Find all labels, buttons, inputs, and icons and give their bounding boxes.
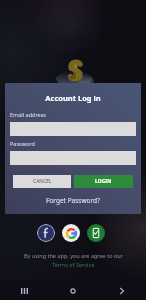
button[interactable]: Sign in with Facebook xyxy=(37,224,55,242)
button[interactable]: Sign in with Google xyxy=(62,224,80,242)
staticText: LOGIN xyxy=(95,178,112,185)
staticText: Account Log in xyxy=(5,93,141,103)
button[interactable]: Forget Password? xyxy=(43,194,103,207)
button[interactable]: LOGIN xyxy=(74,175,133,188)
button[interactable]: Back xyxy=(97,281,146,300)
staticText: Forget Password? xyxy=(46,196,100,205)
button[interactable]: Sign in with phone number xyxy=(87,224,105,242)
staticText: CANCEL xyxy=(33,178,52,185)
button[interactable]: Terms of Service xyxy=(52,261,95,268)
button[interactable]: CANCEL xyxy=(13,175,71,188)
staticText: Password xyxy=(10,140,35,147)
staticText: By using the app, you are agree to our xyxy=(24,252,123,259)
staticText: Email address xyxy=(10,111,46,118)
button[interactable]: Home xyxy=(48,281,97,300)
button[interactable]: Recent apps xyxy=(0,281,48,300)
